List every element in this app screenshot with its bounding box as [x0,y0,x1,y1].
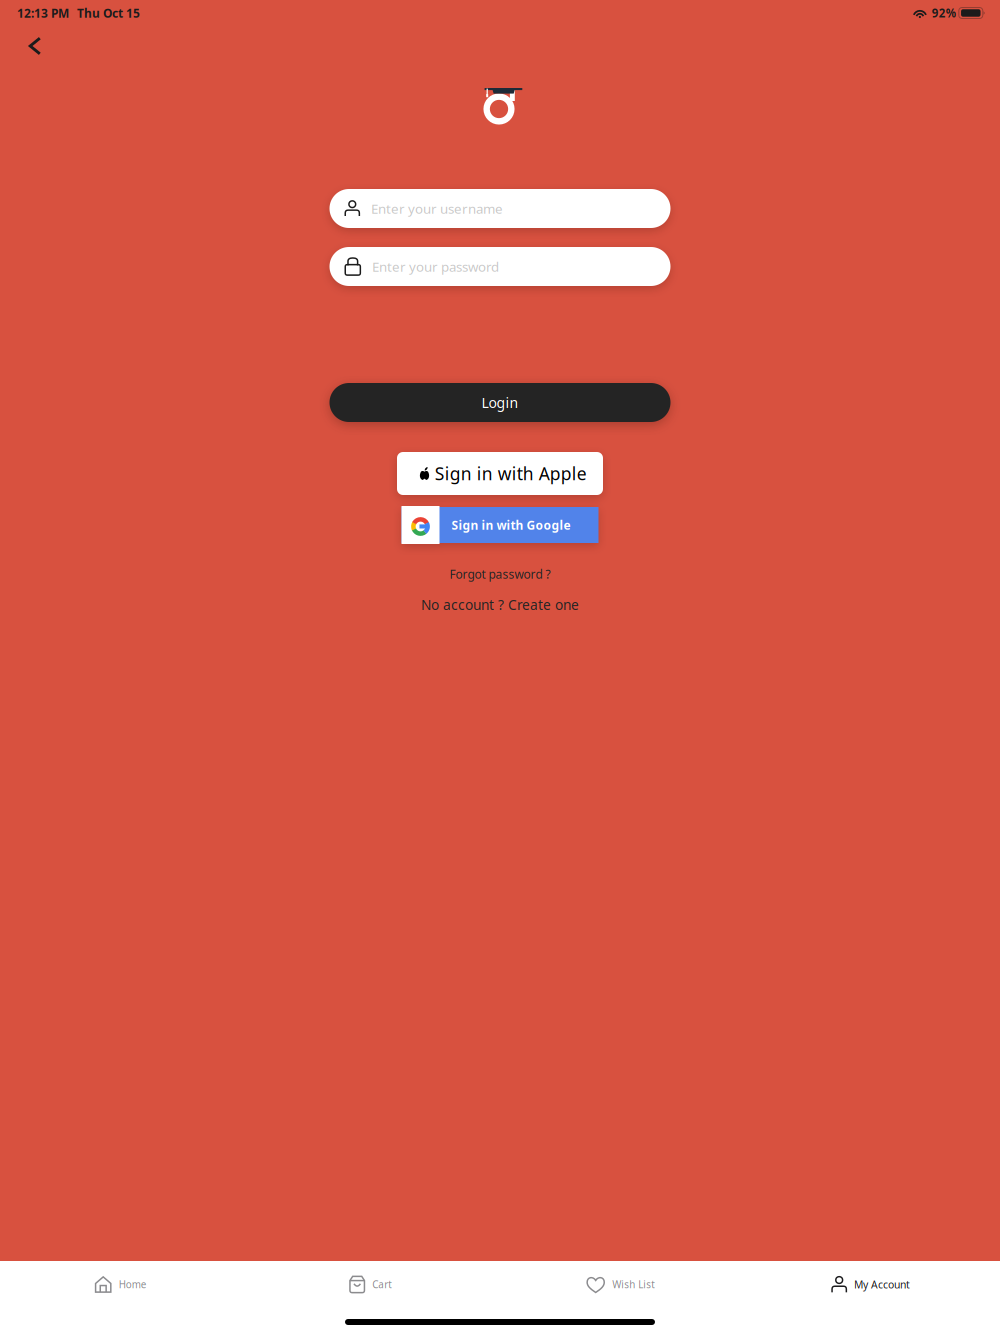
button[interactable]: Cart [250,1261,500,1305]
staticText: Enter your password [372,257,499,276]
button[interactable]: Sign in with Apple [397,452,603,495]
staticText: Cart [372,1278,392,1291]
staticText: 12:13 PM [17,5,69,21]
staticText: 92% [932,5,956,21]
staticText: Forgot password ? [449,566,550,582]
staticText: Enter your username [371,199,503,218]
staticText: No account ? Create one [421,595,579,614]
staticText: Wish List [612,1278,655,1291]
staticText: Login [481,393,518,412]
staticText: Sign in with Apple [435,462,587,485]
staticText: Home [119,1278,147,1291]
button[interactable]: Home [0,1261,250,1305]
button[interactable]: Back [13,30,57,62]
staticText: Sign in with Google [451,517,570,533]
staticText: My Account [854,1277,910,1292]
button[interactable]: My Account [750,1261,1000,1305]
button[interactable]: Sign in with Google [401,506,598,544]
staticText: Thu Oct 15 [77,5,140,21]
button[interactable]: Forgot password ? [441,561,558,587]
button[interactable]: Wish List [500,1261,750,1305]
button[interactable]: No account ? Create one [413,590,587,619]
button[interactable]: Login [329,383,670,422]
